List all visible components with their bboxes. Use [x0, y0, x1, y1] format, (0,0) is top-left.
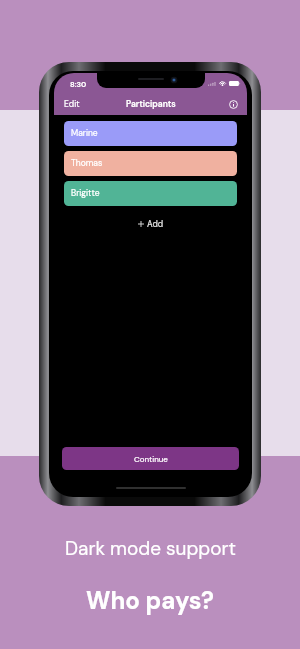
- staticText: Add: [147, 219, 164, 229]
- staticText: Continue: [134, 454, 168, 464]
- staticText: Thomas: [71, 158, 103, 169]
- staticText: Dark mode support: [65, 536, 236, 561]
- staticText: 8:30: [70, 80, 87, 90]
- button[interactable]: Thomas: [64, 151, 237, 176]
- button[interactable]: Marine: [64, 121, 237, 146]
- button[interactable]: Brigitte: [64, 181, 237, 206]
- button[interactable]: Edit: [54, 95, 90, 114]
- staticText: Participants: [126, 99, 176, 110]
- button[interactable]: Continue: [62, 447, 239, 470]
- button[interactable]: Add: [128, 216, 174, 232]
- staticText: Who pays?: [86, 585, 214, 616]
- staticText: Edit: [64, 99, 80, 110]
- staticText: Brigitte: [71, 188, 100, 199]
- button[interactable]: Info: [220, 96, 247, 113]
- staticText: Marine: [71, 128, 98, 139]
